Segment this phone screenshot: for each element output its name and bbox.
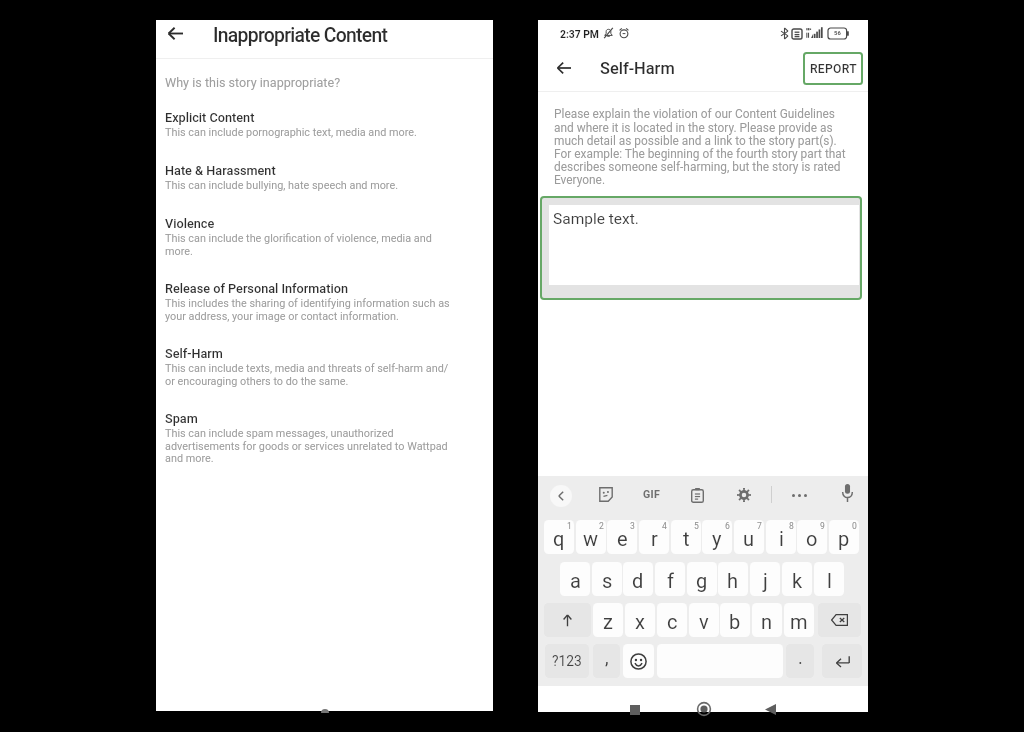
button[interactable]: Self-Harm [165, 346, 451, 411]
staticText: 1 [567, 521, 572, 531]
button[interactable]: z [593, 603, 623, 637]
button[interactable]: Home [697, 702, 711, 716]
staticText: m [790, 610, 808, 633]
button[interactable]: Previous [550, 485, 572, 507]
button[interactable]: i [766, 520, 796, 554]
button[interactable]: x [625, 603, 655, 637]
button[interactable]: f [655, 562, 685, 596]
staticText: REPORT [810, 62, 857, 76]
staticText: v [699, 610, 709, 633]
staticText: j [763, 569, 768, 592]
button[interactable]: Violence [165, 216, 451, 281]
button[interactable]: Stickers [599, 487, 613, 502]
staticText: 2:37 PM [560, 28, 599, 40]
staticText: 2 [599, 521, 604, 531]
button[interactable]: Back [765, 704, 776, 715]
staticText: Sample text. [553, 210, 639, 228]
button[interactable]: b [720, 603, 750, 637]
button[interactable]: REPORT [803, 52, 863, 85]
staticText: ?123 [552, 653, 582, 669]
staticText: f [667, 569, 674, 592]
button[interactable]: j [750, 562, 780, 596]
button[interactable]: y [702, 520, 732, 554]
staticText: 4 [662, 521, 667, 531]
button[interactable]: s [592, 562, 622, 596]
button[interactable]: Sample text. [540, 196, 862, 300]
button[interactable]: Spam [165, 411, 451, 488]
button[interactable]: g [687, 562, 717, 596]
button[interactable]: d [623, 562, 653, 596]
button[interactable]: GIF [643, 488, 661, 500]
staticText: 8 [789, 521, 794, 531]
staticText: This includes the sharing of identifying… [165, 297, 451, 322]
button[interactable]: Shift [544, 603, 591, 637]
button[interactable]: k [782, 562, 812, 596]
button[interactable]: Enter [822, 644, 862, 678]
button[interactable]: Settings [737, 488, 751, 502]
button[interactable]: More options [792, 490, 807, 500]
button[interactable]: Comma [593, 644, 620, 678]
staticText: w [583, 527, 599, 550]
button[interactable]: w [576, 520, 606, 554]
staticText: e [617, 527, 628, 550]
button[interactable]: r [639, 520, 669, 554]
button[interactable]: Back [550, 54, 577, 82]
staticText: q [553, 527, 565, 550]
staticText: Explicit Content [165, 110, 255, 125]
staticText: 9 [820, 521, 825, 531]
button[interactable]: Hate & Harassment [165, 163, 451, 216]
staticText: x [635, 610, 645, 633]
button[interactable]: Back [161, 19, 189, 47]
staticText: 7 [757, 521, 762, 531]
button[interactable]: h [718, 562, 748, 596]
button[interactable]: e [607, 520, 637, 554]
button[interactable]: l [814, 562, 844, 596]
staticText: This can include bullying, hate speech a… [165, 179, 399, 192]
staticText: Spam [165, 411, 198, 426]
button[interactable]: p [829, 520, 859, 554]
button[interactable]: m [784, 603, 814, 637]
button[interactable]: o [797, 520, 827, 554]
staticText: 0 [852, 521, 857, 531]
button[interactable]: Release of Personal Information [165, 281, 451, 346]
staticText: , [605, 647, 609, 668]
button[interactable]: c [657, 603, 687, 637]
button[interactable]: Voice input [842, 484, 853, 502]
button[interactable]: Symbols [545, 644, 589, 678]
button[interactable]: q [544, 520, 574, 554]
button[interactable]: Explicit Content [165, 110, 451, 163]
button[interactable]: Emoji [623, 644, 654, 678]
button[interactable]: Clipboard [691, 488, 704, 503]
staticText: This can include the glorification of vi… [165, 232, 451, 257]
button[interactable]: a [560, 562, 590, 596]
staticText: 56 [834, 30, 841, 37]
staticText: n [761, 610, 773, 633]
staticText: o [806, 527, 818, 550]
staticText: This can include spam messages, unauthor… [165, 427, 451, 464]
staticText: b [729, 610, 741, 633]
button[interactable]: v [689, 603, 719, 637]
staticText: Violence [165, 216, 215, 231]
button[interactable]: n [752, 603, 782, 637]
staticText: z [603, 610, 613, 633]
staticText: p [838, 527, 850, 550]
staticText: a [570, 569, 581, 592]
button[interactable]: Backspace [818, 603, 861, 637]
staticText: u [743, 527, 755, 550]
staticText: t [683, 527, 690, 550]
staticText: 6 [725, 521, 730, 531]
button[interactable]: Period [786, 644, 814, 678]
staticText: c [667, 610, 678, 633]
button[interactable]: t [671, 520, 701, 554]
button[interactable]: u [734, 520, 764, 554]
staticText: Please explain the violation of our Cont… [554, 107, 849, 187]
staticText: y [712, 527, 722, 550]
staticText: k [792, 569, 803, 592]
staticText: This can include texts, media and threat… [165, 362, 451, 387]
staticText: Inappropriate Content [213, 24, 388, 47]
staticText: i [779, 527, 784, 550]
staticText: s [602, 569, 613, 592]
staticText: Why is this story inappropriate? [165, 75, 341, 90]
